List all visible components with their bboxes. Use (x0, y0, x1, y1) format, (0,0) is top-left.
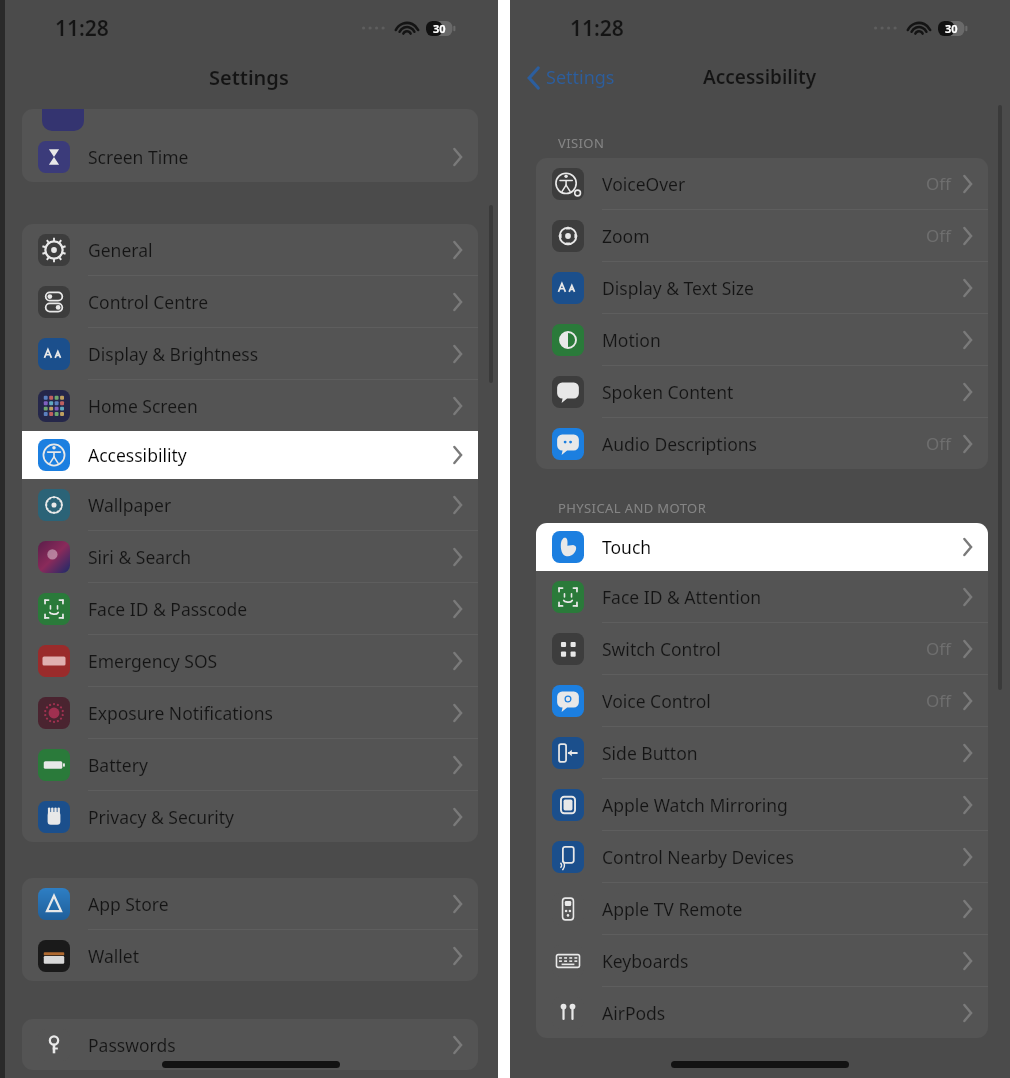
button[interactable]: Zoom (536, 210, 988, 261)
button[interactable]: VoiceOver (536, 158, 988, 209)
staticText: Display & Text Size (602, 276, 754, 300)
staticText: VISION (558, 134, 605, 152)
staticText: AirPods (602, 1001, 666, 1025)
button[interactable]: Face ID & Attention (536, 571, 988, 622)
staticText: 30 (433, 21, 446, 36)
button[interactable]: Display & Text Size (536, 262, 988, 313)
staticText: Wallpaper (88, 493, 172, 517)
staticText: 30 (945, 21, 958, 36)
staticText: Screen Time (88, 145, 189, 169)
button[interactable]: Wallpaper (22, 479, 478, 530)
staticText: Settings (546, 65, 615, 90)
staticText: Home Screen (88, 394, 198, 418)
button[interactable]: Emergency SOS (22, 635, 478, 686)
staticText: Zoom (602, 224, 650, 248)
staticText: Spoken Content (602, 380, 734, 404)
button[interactable]: Accessibility (22, 431, 478, 479)
staticText: Face ID & Attention (602, 585, 762, 609)
staticText: Off (926, 689, 951, 712)
staticText: PHYSICAL AND MOTOR (558, 499, 707, 517)
button[interactable]: Control Nearby Devices (536, 831, 988, 882)
staticText: Display & Brightness (88, 342, 259, 366)
button[interactable]: Privacy & Security (22, 791, 478, 842)
button[interactable]: Control Centre (22, 276, 478, 327)
staticText: Accessibility (703, 64, 817, 90)
staticText: Off (926, 224, 951, 247)
button[interactable]: Exposure Notifications (22, 687, 478, 738)
button[interactable]: Spoken Content (536, 366, 988, 417)
button[interactable]: AirPods (536, 987, 988, 1038)
button[interactable]: App Store (22, 878, 478, 929)
staticText: Audio Descriptions (602, 432, 757, 456)
staticText: Off (926, 172, 951, 195)
staticText: Wallet (88, 944, 139, 968)
staticText: VoiceOver (602, 172, 686, 196)
staticText: Accessibility (88, 443, 187, 467)
staticText: Voice Control (602, 689, 711, 713)
staticText: Switch Control (602, 637, 721, 661)
staticText: Touch (602, 535, 652, 559)
button[interactable]: Motion (536, 314, 988, 365)
button[interactable]: Display & Brightness (22, 328, 478, 379)
staticText: Privacy & Security (88, 805, 234, 829)
button[interactable]: Siri & Search (22, 531, 478, 582)
button[interactable]: Side Button (536, 727, 988, 778)
staticText: Off (926, 432, 951, 455)
button[interactable]: Battery (22, 739, 478, 790)
staticText: Apple TV Remote (602, 897, 743, 921)
staticText: Face ID & Passcode (88, 597, 248, 621)
button[interactable]: Home Screen (22, 380, 478, 431)
staticText: Apple Watch Mirroring (602, 793, 788, 817)
staticText: Motion (602, 328, 661, 352)
staticText: Control Nearby Devices (602, 845, 794, 869)
button[interactable]: Apple Watch Mirroring (536, 779, 988, 830)
staticText: Control Centre (88, 290, 209, 314)
button[interactable]: Screen Time (22, 131, 478, 182)
staticText: Emergency SOS (88, 649, 218, 673)
staticText: App Store (88, 892, 169, 916)
button[interactable]: Face ID & Passcode (22, 583, 478, 634)
button[interactable]: Voice Control (536, 675, 988, 726)
button[interactable]: Audio Descriptions (536, 418, 988, 469)
button[interactable]: General (22, 224, 478, 275)
button[interactable]: Wallet (22, 930, 478, 981)
staticText: Passwords (88, 1033, 176, 1057)
button[interactable]: Keyboards (536, 935, 988, 986)
button[interactable]: Passwords (22, 1019, 478, 1070)
button[interactable]: Switch Control (536, 623, 988, 674)
staticText: Side Button (602, 741, 698, 765)
button[interactable]: Settings (510, 59, 625, 96)
staticText: General (88, 238, 153, 262)
staticText: 11:28 (570, 14, 624, 43)
staticText: Settings (209, 64, 289, 91)
staticText: Siri & Search (88, 545, 192, 569)
button[interactable]: Touch (536, 523, 988, 571)
button[interactable]: Apple TV Remote (536, 883, 988, 934)
staticText: Off (926, 637, 951, 660)
staticText: 11:28 (55, 14, 109, 43)
staticText: Battery (88, 753, 148, 777)
staticText: Keyboards (602, 949, 689, 973)
staticText: Exposure Notifications (88, 701, 273, 725)
